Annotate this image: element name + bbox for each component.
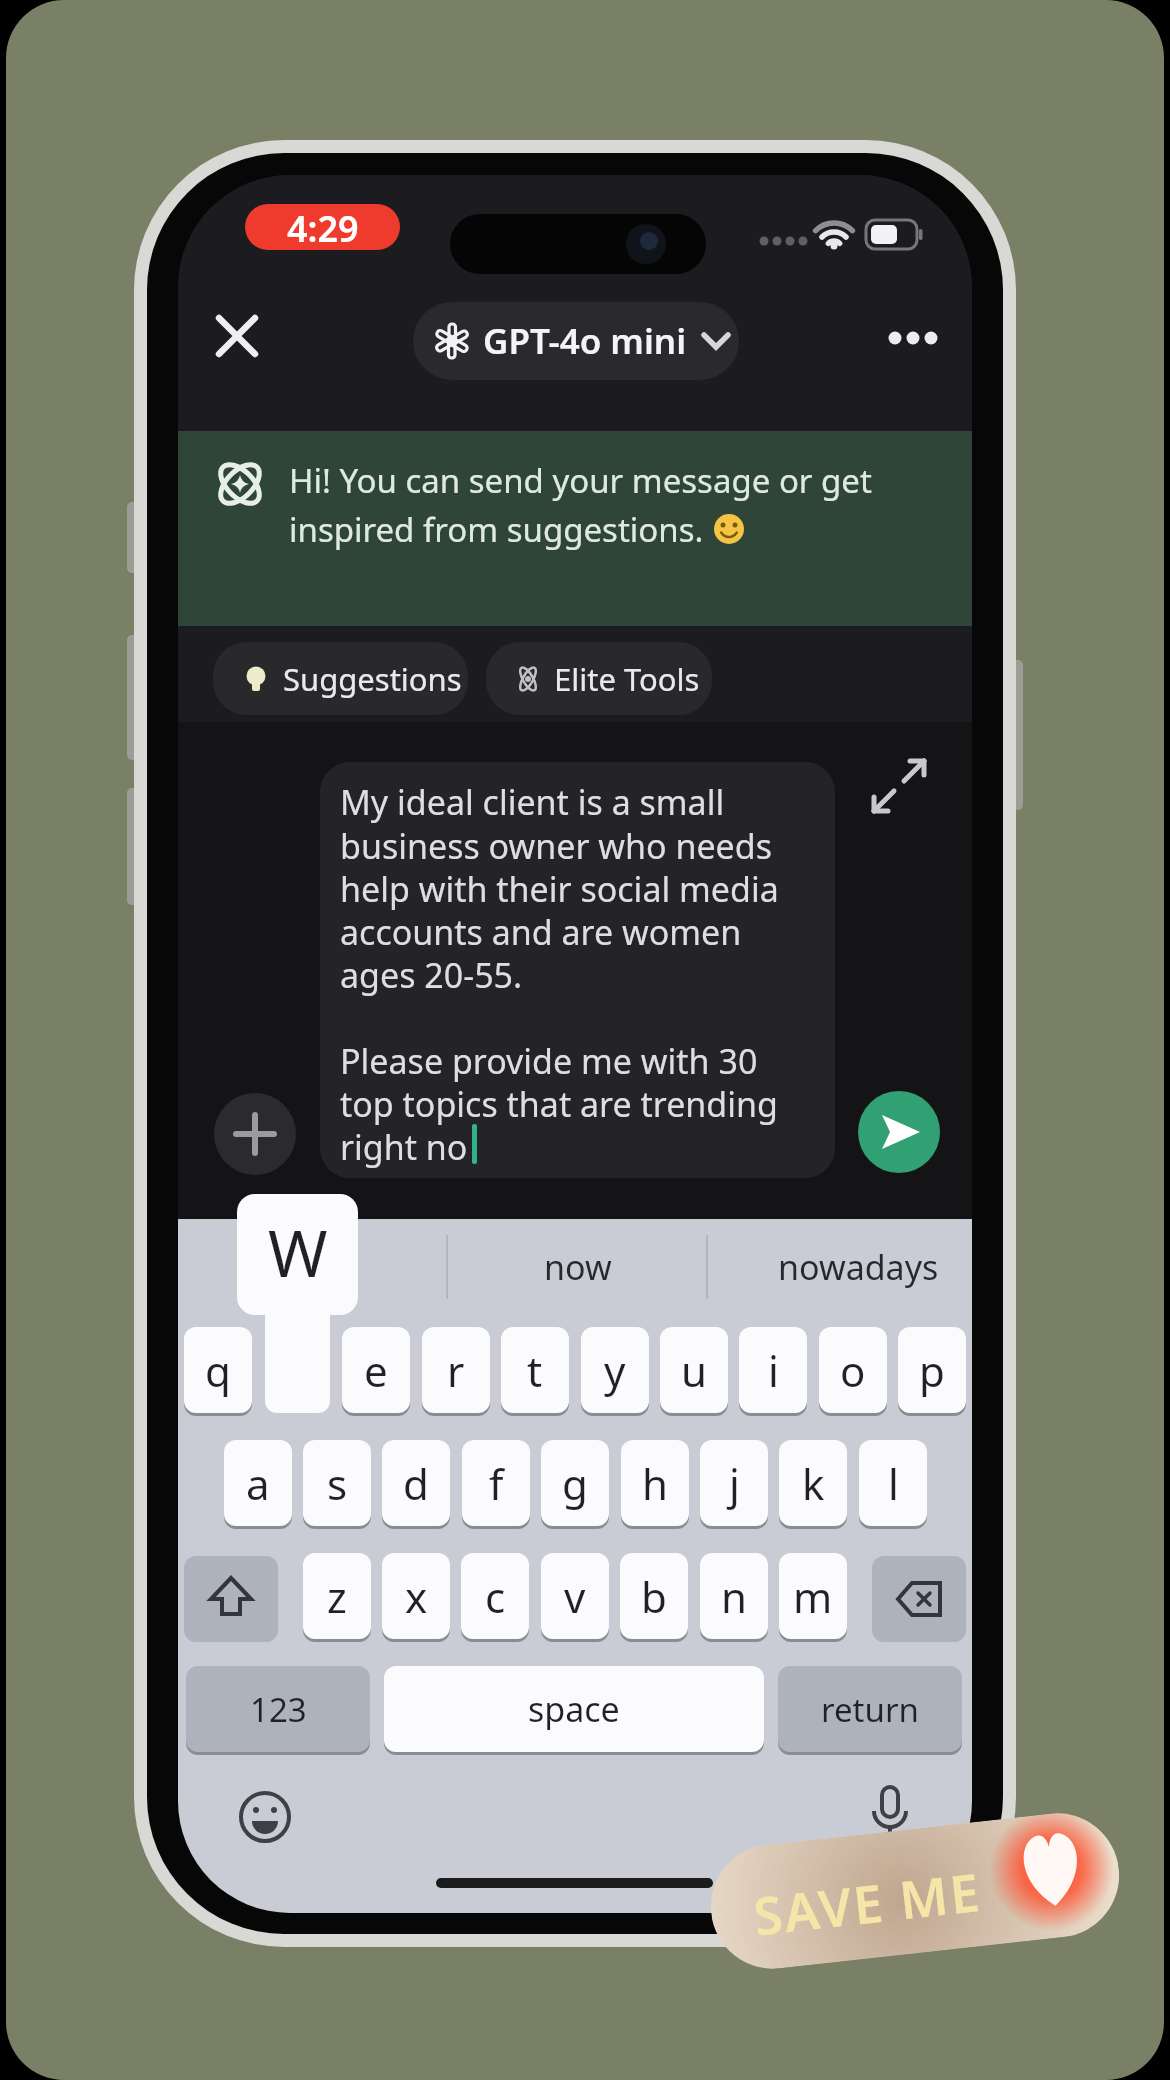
- staticText: r: [447, 1342, 465, 1399]
- button[interactable]: SAVE ME: [704, 1807, 1125, 1975]
- staticText: g: [562, 1455, 588, 1512]
- staticText: v: [564, 1568, 586, 1625]
- staticText: return: [821, 1687, 919, 1732]
- staticText: o: [840, 1342, 866, 1399]
- staticText: inspired from suggestions.: [289, 507, 704, 552]
- button[interactable]: Elite Tools: [486, 642, 712, 715]
- button[interactable]: s: [303, 1440, 371, 1526]
- button[interactable]: m: [779, 1553, 847, 1639]
- staticText: c: [485, 1568, 506, 1625]
- button[interactable]: v: [541, 1553, 609, 1639]
- button[interactable]: f: [462, 1440, 530, 1526]
- staticText: b: [641, 1568, 667, 1625]
- button[interactable]: p: [898, 1327, 966, 1413]
- staticText: nowadays: [778, 1244, 939, 1290]
- button[interactable]: o: [819, 1327, 887, 1413]
- button[interactable]: 4:29: [245, 204, 400, 250]
- button[interactable]: return: [778, 1666, 962, 1752]
- button[interactable]: l: [859, 1440, 927, 1526]
- button[interactable]: q: [184, 1327, 252, 1413]
- staticText: j: [729, 1455, 740, 1512]
- staticText: Elite Tools: [554, 658, 700, 700]
- staticText: k: [802, 1455, 825, 1512]
- button[interactable]: Suggestions: [213, 642, 468, 715]
- button[interactable]: [239, 1791, 291, 1843]
- button[interactable]: h: [621, 1440, 689, 1526]
- button[interactable]: d: [382, 1440, 450, 1526]
- staticText: GPT-4o mini: [483, 317, 687, 365]
- button[interactable]: space: [384, 1666, 764, 1752]
- staticText: s: [327, 1455, 348, 1512]
- staticText: x: [405, 1568, 428, 1625]
- staticText: a: [246, 1455, 270, 1512]
- staticText: Suggestions: [283, 658, 462, 700]
- button[interactable]: j: [700, 1440, 768, 1526]
- staticText: i: [768, 1342, 779, 1399]
- staticText: t: [527, 1342, 543, 1399]
- button[interactable]: [881, 323, 945, 353]
- button[interactable]: k: [779, 1440, 847, 1526]
- staticText: u: [681, 1342, 707, 1399]
- staticText: My ideal client is a small business owne…: [340, 779, 779, 1170]
- staticText: q: [205, 1342, 231, 1399]
- button[interactable]: [214, 1093, 296, 1175]
- staticText: h: [642, 1455, 668, 1512]
- button[interactable]: y: [581, 1327, 649, 1413]
- staticText: W: [268, 1209, 328, 1296]
- button[interactable]: e: [342, 1327, 410, 1413]
- button[interactable]: n: [700, 1553, 768, 1639]
- staticText: now: [544, 1244, 612, 1290]
- button[interactable]: b: [620, 1553, 688, 1639]
- button[interactable]: [870, 1785, 910, 1845]
- staticText: f: [489, 1455, 504, 1512]
- button[interactable]: 123: [186, 1666, 370, 1752]
- staticText: n: [721, 1568, 747, 1625]
- button[interactable]: r: [422, 1327, 490, 1413]
- button[interactable]: [184, 1556, 278, 1642]
- staticText: 4:29: [287, 204, 359, 250]
- staticText: Hi! You can send your message or get: [289, 458, 872, 503]
- button[interactable]: a: [224, 1440, 292, 1526]
- button[interactable]: GPT-4o mini: [413, 302, 739, 380]
- button[interactable]: [858, 1091, 940, 1173]
- staticText: y: [604, 1342, 626, 1399]
- staticText: z: [327, 1568, 347, 1625]
- staticText: 123: [250, 1687, 307, 1732]
- staticText: m: [793, 1568, 833, 1625]
- staticText: l: [888, 1455, 899, 1512]
- button[interactable]: z: [303, 1553, 371, 1639]
- staticText: d: [403, 1455, 429, 1512]
- staticText: SAVE ME: [750, 1855, 985, 1951]
- button[interactable]: u: [660, 1327, 728, 1413]
- button[interactable]: [872, 1556, 966, 1642]
- staticText: space: [528, 1686, 620, 1732]
- button[interactable]: x: [382, 1553, 450, 1639]
- button[interactable]: [216, 315, 258, 357]
- button[interactable]: t: [501, 1327, 569, 1413]
- button[interactable]: c: [461, 1553, 529, 1639]
- button[interactable]: i: [739, 1327, 807, 1413]
- button[interactable]: g: [541, 1440, 609, 1526]
- staticText: e: [364, 1342, 388, 1399]
- staticText: p: [919, 1342, 945, 1399]
